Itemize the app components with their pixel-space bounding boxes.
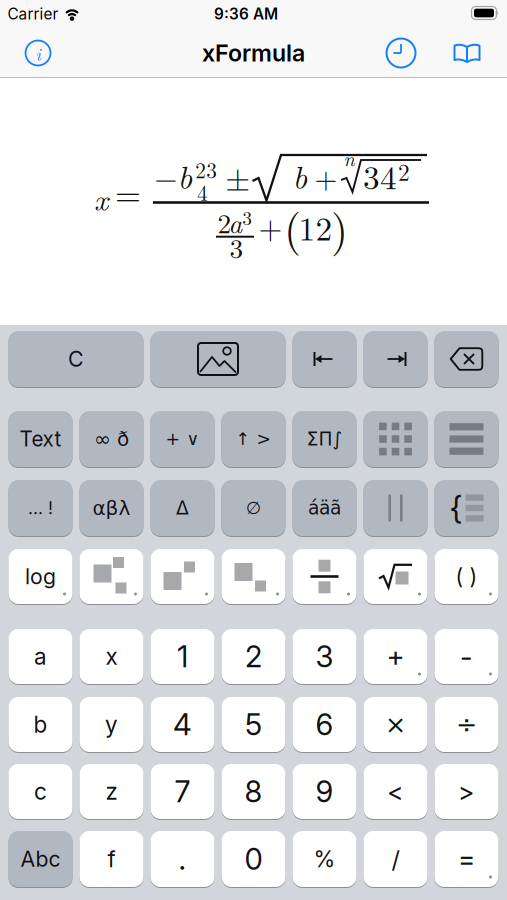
- button[interactable]: b: [8, 697, 72, 752]
- staticText: ΣΠ∫: [306, 428, 342, 450]
- button[interactable]: ( ): [434, 549, 498, 604]
- staticText: ( ): [455, 564, 477, 589]
- staticText: x: [105, 643, 117, 670]
- button[interactable]: +: [363, 629, 427, 684]
- staticText: b: [178, 153, 193, 198]
- staticText: n: [343, 144, 354, 172]
- staticText: 23: [195, 154, 217, 184]
- button[interactable]: [363, 480, 427, 536]
- staticText: −: [154, 155, 177, 197]
- button[interactable]: 6: [292, 697, 356, 752]
- button[interactable]: [434, 411, 498, 467]
- button[interactable]: >: [434, 764, 498, 819]
- button[interactable]: αβλ: [79, 480, 143, 536]
- button[interactable]: z: [79, 764, 143, 819]
- button[interactable]: ΣΠ∫: [292, 411, 356, 467]
- staticText: C: [68, 346, 84, 372]
- button[interactable]: Abc: [8, 831, 72, 887]
- staticText: b: [292, 153, 307, 198]
- button[interactable]: /: [363, 831, 427, 887]
- staticText: 6: [315, 707, 333, 742]
- staticText: >: [458, 776, 475, 807]
- button[interactable]: c: [8, 764, 72, 819]
- staticText: 8: [244, 774, 262, 809]
- button[interactable]: + ∨: [150, 411, 214, 467]
- staticText: z: [105, 778, 117, 805]
- button[interactable]: 5: [221, 697, 285, 752]
- button[interactable]: =: [434, 831, 498, 887]
- button[interactable]: [363, 331, 427, 387]
- staticText: xFormula: [202, 39, 305, 67]
- button[interactable]: [150, 331, 285, 387]
- button[interactable]: a: [8, 629, 72, 684]
- staticText: y: [105, 711, 118, 738]
- button[interactable]: y: [79, 697, 143, 752]
- staticText: Abc: [20, 846, 60, 872]
- staticText: i: [35, 41, 40, 66]
- staticText: ±: [225, 154, 250, 200]
- button[interactable]: 7: [150, 764, 214, 819]
- staticText: αβλ: [92, 496, 130, 520]
- button[interactable]: f: [79, 831, 143, 887]
- button[interactable]: [363, 411, 427, 467]
- staticText: 4: [197, 177, 208, 207]
- button[interactable]: 0: [221, 831, 285, 887]
- button[interactable]: [292, 549, 356, 604]
- staticText: 2: [398, 154, 410, 187]
- button[interactable]: 2: [221, 629, 285, 684]
- button[interactable]: x: [79, 629, 143, 684]
- button[interactable]: Text: [8, 411, 72, 467]
- button[interactable]: [221, 549, 285, 604]
- staticText: b: [33, 711, 47, 738]
- staticText: ): [331, 196, 348, 258]
- button[interactable]: ∞ ð: [79, 411, 143, 467]
- staticText: 12: [298, 203, 332, 250]
- button[interactable]: ×: [363, 697, 427, 752]
- button[interactable]: [150, 549, 214, 604]
- staticText: -: [460, 640, 473, 673]
- staticText: ∞ ð: [94, 427, 129, 451]
- staticText: 3: [315, 639, 333, 674]
- staticText: a: [228, 203, 242, 241]
- button[interactable]: [363, 549, 427, 604]
- button[interactable]: {: [434, 480, 498, 536]
- staticText: ... !: [28, 497, 53, 518]
- button[interactable]: ↑ >: [221, 411, 285, 467]
- button[interactable]: [292, 331, 356, 387]
- button[interactable]: %: [292, 831, 356, 887]
- staticText: 3: [229, 227, 243, 266]
- staticText: + ∨: [165, 429, 199, 449]
- staticText: 2: [217, 202, 231, 241]
- button[interactable]: .: [150, 831, 214, 887]
- button[interactable]: 8: [221, 764, 285, 819]
- button[interactable]: -: [434, 629, 498, 684]
- staticText: 7: [174, 774, 190, 809]
- staticText: (: [284, 195, 301, 257]
- button[interactable]: [434, 331, 498, 387]
- staticText: 1: [177, 639, 188, 674]
- button[interactable]: 4: [150, 697, 214, 752]
- button[interactable]: [452, 42, 481, 63]
- button[interactable]: Δ: [150, 480, 214, 536]
- button[interactable]: [385, 37, 416, 68]
- button[interactable]: 9: [292, 764, 356, 819]
- button[interactable]: i: [23, 38, 53, 68]
- staticText: %: [313, 845, 335, 873]
- staticText: =: [458, 843, 475, 875]
- button[interactable]: C: [8, 331, 143, 387]
- staticText: ↑ >: [235, 429, 271, 449]
- button[interactable]: log: [8, 549, 72, 604]
- staticText: ∅: [246, 498, 261, 518]
- button[interactable]: ... !: [8, 480, 72, 536]
- staticText: =: [115, 168, 141, 216]
- button[interactable]: áäã: [292, 480, 356, 536]
- staticText: ÷: [456, 710, 477, 739]
- button[interactable]: 1: [150, 629, 214, 684]
- staticText: 9: [315, 774, 333, 809]
- button[interactable]: 3: [292, 629, 356, 684]
- staticText: 2: [245, 639, 262, 674]
- button[interactable]: [79, 549, 143, 604]
- button[interactable]: <: [363, 764, 427, 819]
- button[interactable]: ∅: [221, 480, 285, 536]
- button[interactable]: ÷: [434, 697, 498, 752]
